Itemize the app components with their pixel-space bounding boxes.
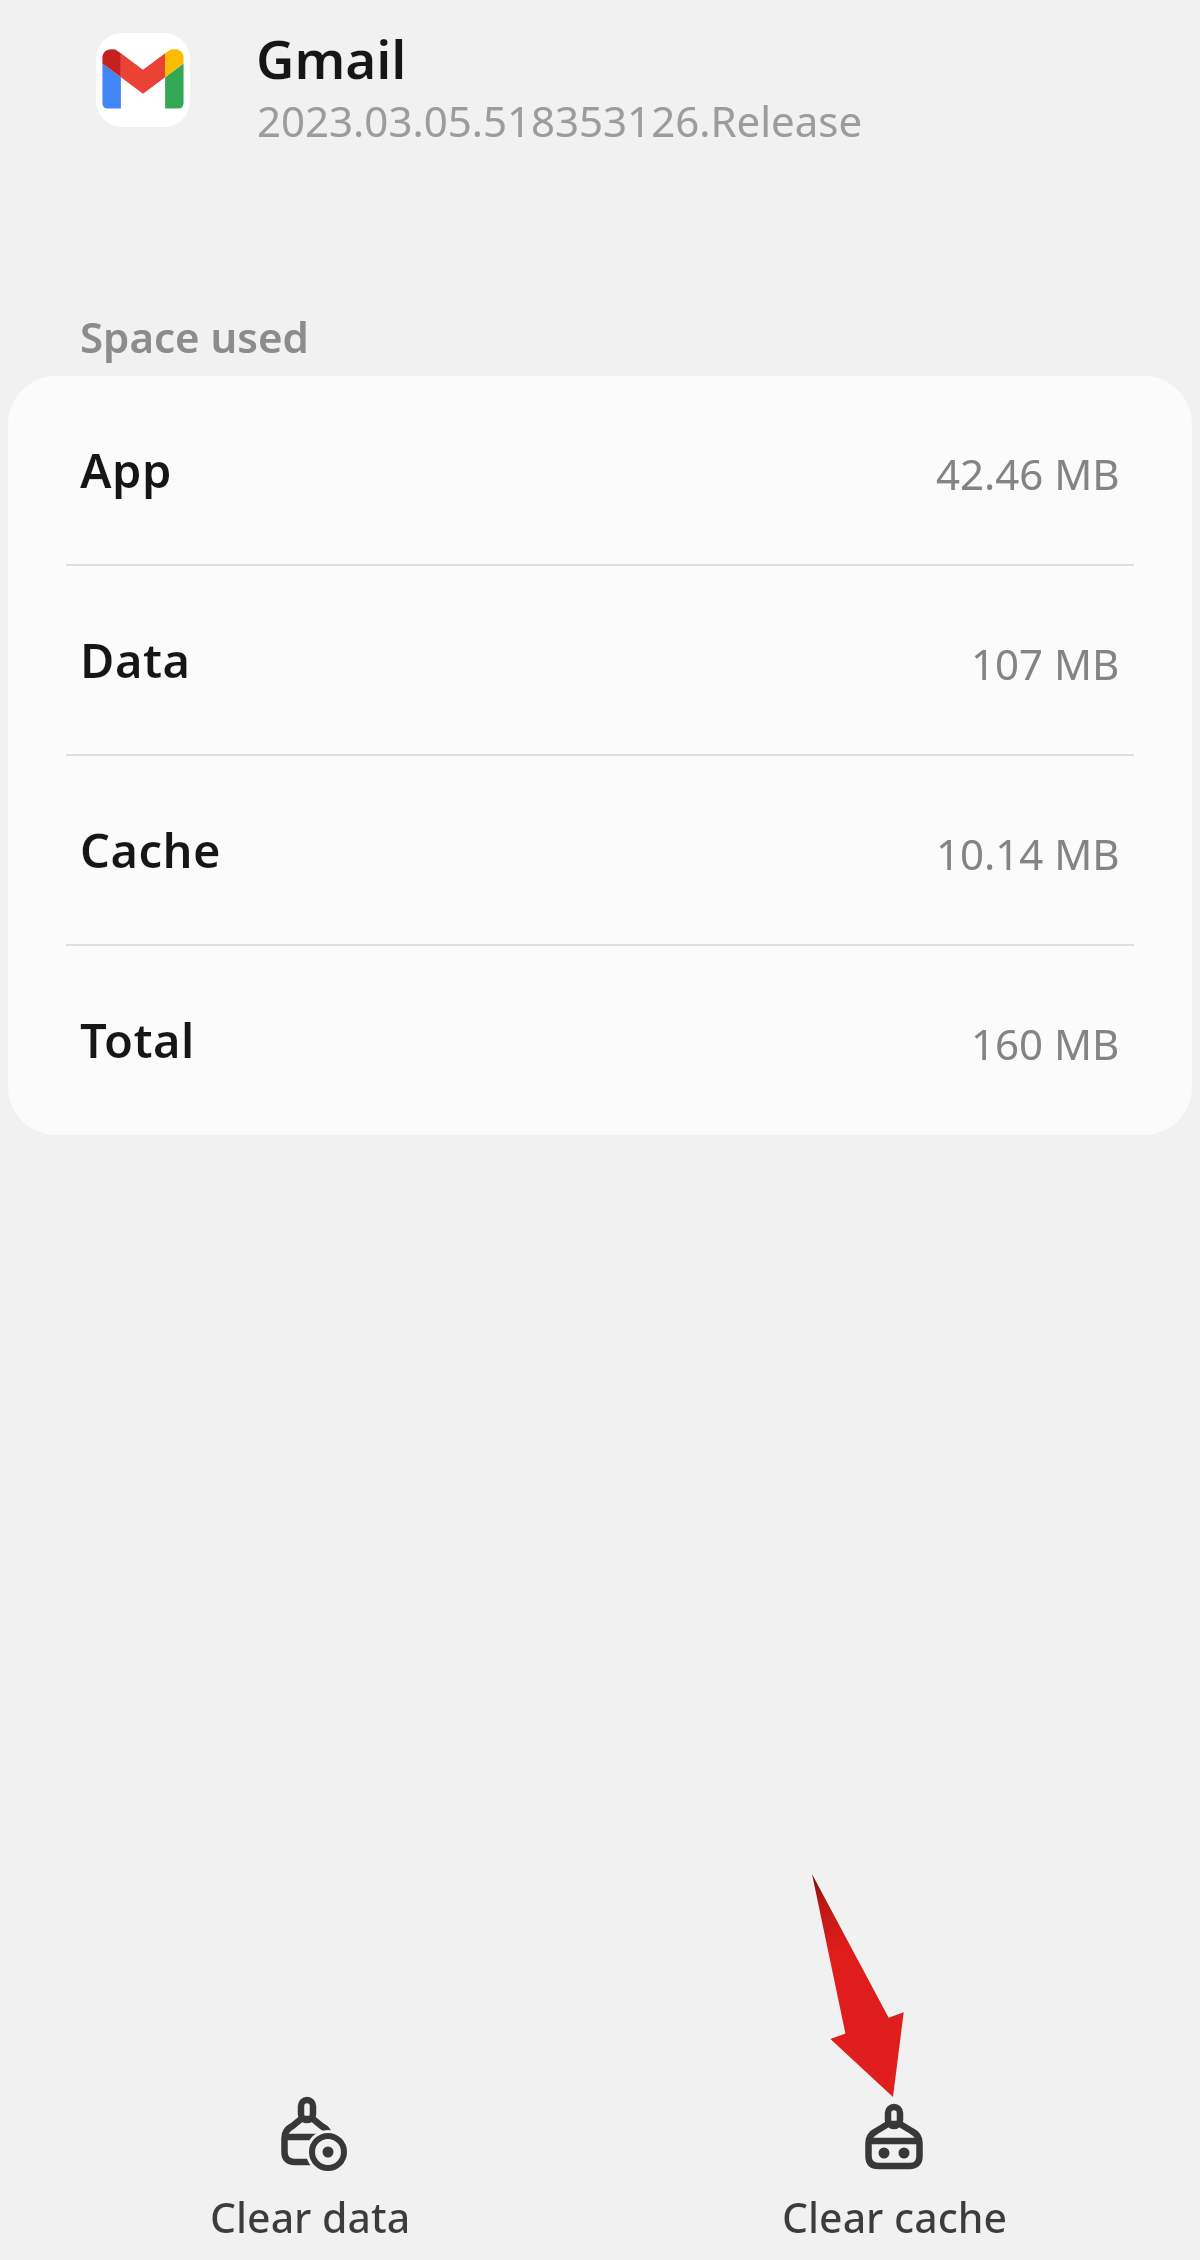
staticText: 2023.03.05.518353126.Release <box>257 92 863 149</box>
staticText: Clear cache <box>782 2189 1008 2245</box>
button[interactable]: Total <box>8 946 1192 1134</box>
button[interactable]: Cache <box>8 756 1192 944</box>
staticText: 107 MB <box>971 635 1120 692</box>
staticText: Total <box>80 1008 195 1072</box>
staticText: Gmail <box>256 22 407 94</box>
staticText: Clear data <box>210 2189 411 2245</box>
staticText: 42.46 MB <box>936 445 1120 502</box>
staticText: 10.14 MB <box>936 825 1120 882</box>
staticText: Data <box>80 628 191 692</box>
button[interactable]: App <box>8 376 1192 564</box>
staticText: Cache <box>80 818 222 882</box>
button[interactable]: Data <box>8 566 1192 754</box>
staticText: App <box>80 438 172 502</box>
button[interactable]: Clear cache <box>750 2080 1040 2245</box>
staticText: 160 MB <box>971 1015 1120 1072</box>
button[interactable]: Clear data <box>165 2080 455 2245</box>
staticText: Space used <box>80 308 309 365</box>
